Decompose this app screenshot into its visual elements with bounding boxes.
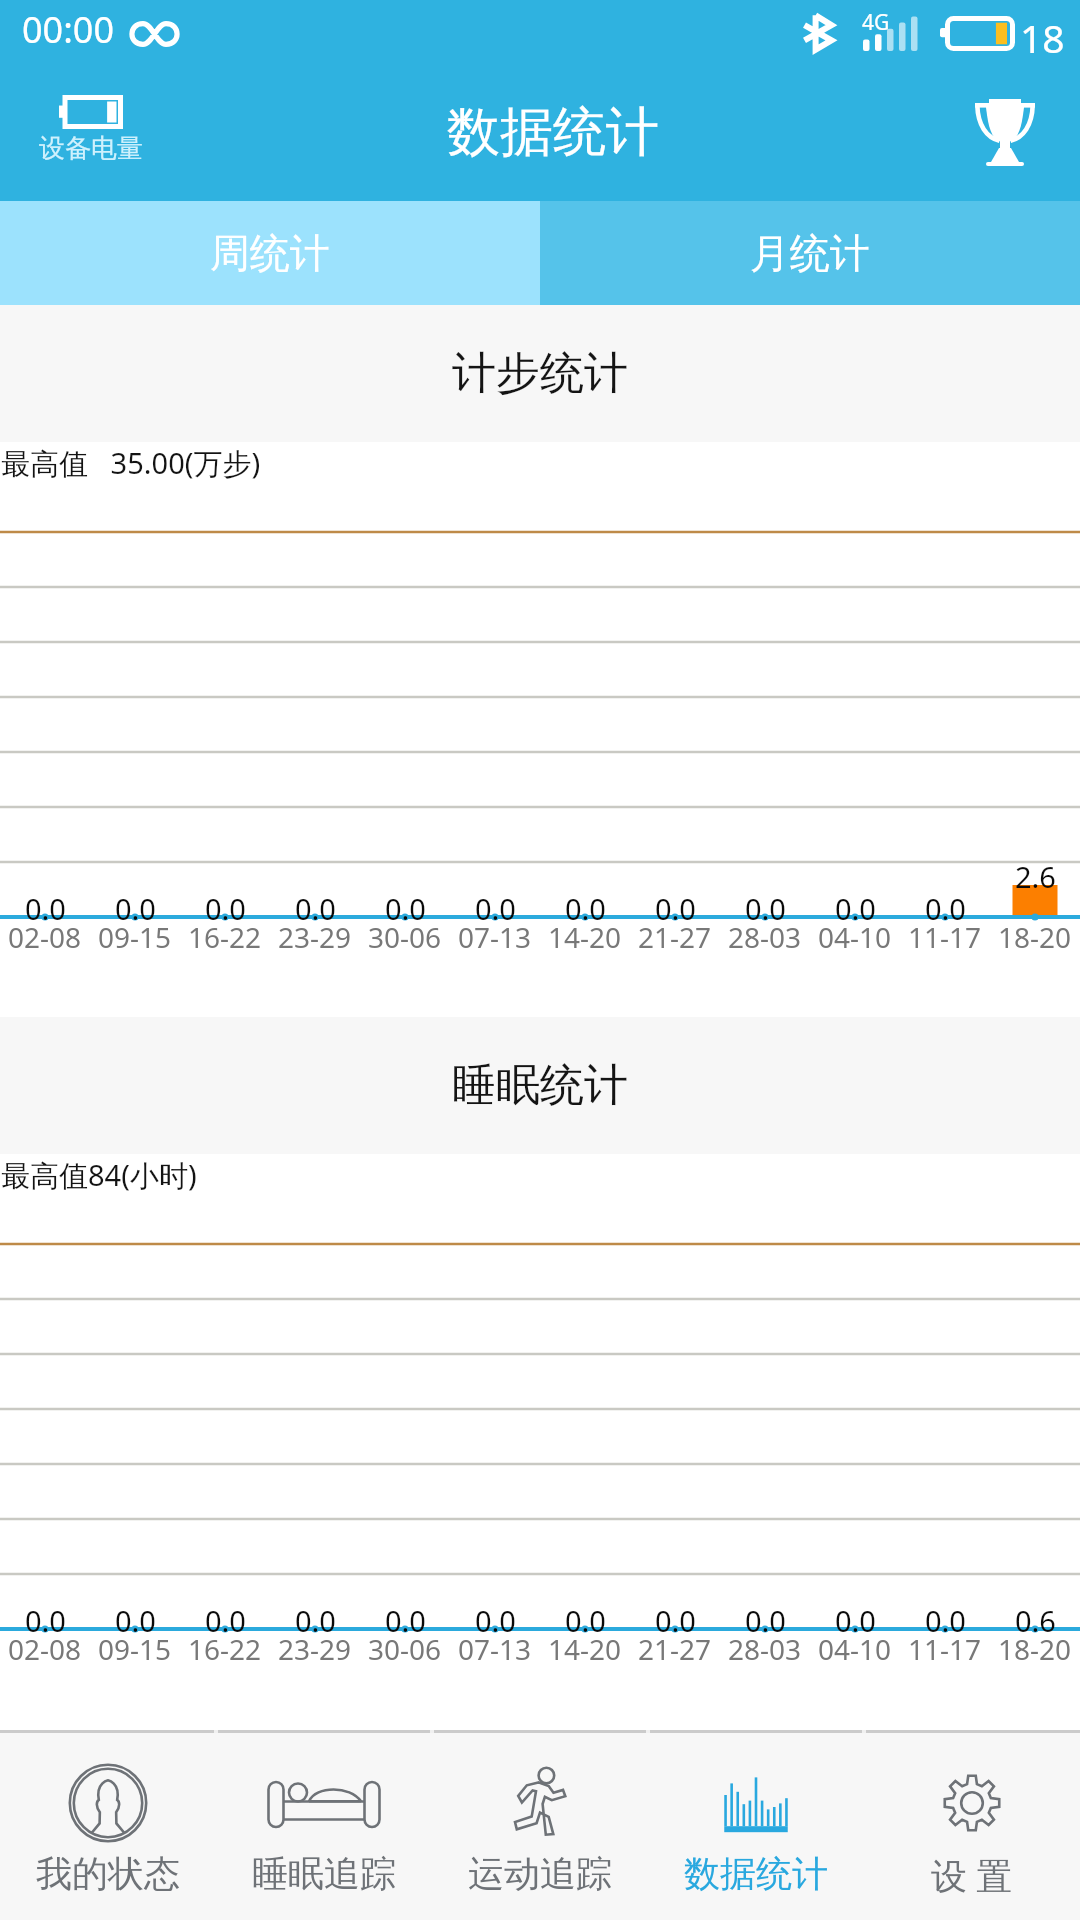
- staticText: 0.0: [25, 889, 66, 928]
- staticText: 0.0: [655, 1601, 696, 1640]
- staticText: 最高值 35.00(万步): [1, 443, 261, 483]
- button[interactable]: 设 置: [864, 1733, 1080, 1920]
- staticText: 0.0: [25, 1601, 66, 1640]
- staticText: 0.0: [835, 1601, 876, 1640]
- staticText: 28-03: [728, 1630, 802, 1668]
- staticText: 最高值84(小时): [1, 1155, 197, 1195]
- staticText: 04-10: [818, 1630, 892, 1668]
- staticText: 18-20: [998, 918, 1072, 956]
- staticText: 09-15: [98, 1630, 172, 1668]
- staticText: 23-29: [278, 1630, 352, 1668]
- button[interactable]: Achievements: [955, 89, 1055, 175]
- button[interactable]: 周统计: [0, 201, 540, 305]
- staticText: 周统计: [210, 228, 330, 278]
- button[interactable]: 设备电量: [29, 92, 153, 168]
- staticText: 0.0: [475, 889, 516, 928]
- staticText: 23-29: [278, 918, 352, 956]
- staticText: 2.6: [1015, 857, 1056, 896]
- staticText: 0.0: [925, 889, 966, 928]
- staticText: 0.0: [115, 1601, 156, 1640]
- staticText: 0.0: [655, 889, 696, 928]
- staticText: 睡眠追踪: [252, 1851, 396, 1896]
- staticText: 07-13: [458, 918, 532, 956]
- staticText: 0.0: [205, 1601, 246, 1640]
- staticText: 18: [1020, 11, 1065, 64]
- staticText: 0.0: [295, 1601, 336, 1640]
- staticText: 0.0: [745, 1601, 786, 1640]
- staticText: 设备电量: [39, 132, 143, 165]
- staticText: 0.0: [745, 889, 786, 928]
- staticText: 我的状态: [36, 1851, 180, 1896]
- staticText: 28-03: [728, 918, 802, 956]
- staticText: 0.0: [295, 889, 336, 928]
- staticText: 0.0: [925, 1601, 966, 1640]
- staticText: 00:00: [22, 5, 115, 54]
- staticText: 30-06: [368, 1630, 442, 1668]
- button[interactable]: 月统计: [540, 201, 1080, 305]
- staticText: 睡眠统计: [452, 1058, 628, 1113]
- button[interactable]: 运动追踪: [432, 1733, 648, 1920]
- staticText: 04-10: [818, 918, 892, 956]
- staticText: 09-15: [98, 918, 172, 956]
- staticText: 数据统计: [684, 1851, 828, 1896]
- staticText: 07-13: [458, 1630, 532, 1668]
- staticText: 18-20: [998, 1630, 1072, 1668]
- staticText: 11-17: [908, 918, 982, 956]
- staticText: 0.0: [565, 1601, 606, 1640]
- staticText: 21-27: [638, 918, 712, 956]
- staticText: 21-27: [638, 1630, 712, 1668]
- staticText: 30-06: [368, 918, 442, 956]
- staticText: 0.0: [385, 889, 426, 928]
- staticText: 0.0: [205, 889, 246, 928]
- staticText: 0.0: [385, 1601, 426, 1640]
- button[interactable]: 我的状态: [0, 1733, 216, 1920]
- staticText: 0.0: [115, 889, 156, 928]
- staticText: 0.6: [1015, 1601, 1056, 1640]
- staticText: 0.0: [475, 1601, 516, 1640]
- staticText: 0.0: [835, 889, 876, 928]
- staticText: 4G: [862, 8, 890, 37]
- button[interactable]: 数据统计: [648, 1733, 864, 1920]
- staticText: 运动追踪: [468, 1851, 612, 1896]
- button[interactable]: 睡眠追踪: [216, 1733, 432, 1920]
- staticText: 16-22: [188, 918, 262, 956]
- staticText: 02-08: [8, 1630, 82, 1668]
- staticText: 月统计: [750, 228, 870, 278]
- staticText: 02-08: [8, 918, 82, 956]
- staticText: 16-22: [188, 1630, 262, 1668]
- staticText: 数据统计: [447, 99, 659, 166]
- staticText: 11-17: [908, 1630, 982, 1668]
- staticText: 14-20: [548, 1630, 622, 1668]
- staticText: 14-20: [548, 918, 622, 956]
- staticText: 设 置: [931, 1851, 1013, 1900]
- staticText: 计步统计: [452, 346, 628, 401]
- staticText: 0.0: [565, 889, 606, 928]
